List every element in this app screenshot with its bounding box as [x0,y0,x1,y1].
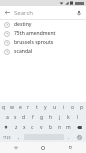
staticText: e [19,104,22,111]
staticText: scandal [14,48,33,55]
staticText: . [68,134,70,141]
button[interactable]: , [14,132,23,142]
button[interactable]: i [59,102,68,112]
staticText: k [67,114,70,121]
button[interactable]: brussels sprouts [0,38,86,47]
staticText: q [2,104,6,111]
button[interactable]: Delete [73,122,86,132]
staticText: a [6,114,9,121]
staticText: g [40,114,44,121]
button[interactable]: Shift [0,122,12,132]
staticText: s [14,114,17,121]
staticText: 75th amendment [14,30,56,37]
button[interactable]: r [24,102,32,112]
button[interactable]: h [46,112,55,122]
staticText: destiny [14,21,32,28]
staticText: u [53,104,57,111]
button[interactable]: Recent apps [59,142,81,153]
staticText: v [40,124,43,131]
staticText: c [31,124,34,131]
button[interactable]: s [11,112,19,122]
button[interactable]: a [3,112,11,122]
staticText: , [18,134,20,141]
button[interactable]: ?123 [0,132,14,142]
button[interactable]: o [68,102,77,112]
staticText: y [44,104,47,111]
staticText: d [22,114,26,121]
button[interactable]: c [28,122,37,132]
button[interactable]: destiny [0,20,86,29]
staticText: Search [14,9,33,17]
staticText: t [36,104,38,111]
staticText: n [58,124,62,131]
button[interactable]: x [20,122,28,132]
button[interactable]: z [12,122,20,132]
staticText: j [59,114,61,121]
button[interactable]: n [55,122,64,132]
staticText: brussels sprouts [14,39,54,46]
staticText: x [23,124,26,131]
staticText: o [71,104,75,111]
button[interactable]: Search [73,132,86,142]
staticText: f [32,114,34,121]
button[interactable]: k [64,112,73,122]
button[interactable]: y [41,102,50,112]
button[interactable]: d [19,112,28,122]
staticText: h [49,114,53,121]
button[interactable]: 75th amendment [0,29,86,38]
staticText: i [63,104,65,111]
button[interactable]: l [73,112,82,122]
staticText: l [77,114,79,121]
button[interactable]: u [50,102,59,112]
button[interactable]: t [32,102,41,112]
button[interactable]: p [77,102,86,112]
button[interactable]: f [28,112,37,122]
button[interactable]: j [55,112,64,122]
staticText: w [10,104,14,111]
button[interactable]: q [0,102,8,112]
button[interactable]: Home [32,142,54,153]
button[interactable]: Back [5,142,27,153]
button[interactable]: scandal [0,47,86,56]
button[interactable]: Voice search [72,6,86,19]
button[interactable]: Back [0,6,14,19]
button[interactable]: w [8,102,16,112]
button[interactable]: g [37,112,46,122]
button[interactable]: e [16,102,24,112]
staticText: p [80,104,84,111]
button[interactable]: Search [14,6,72,19]
button[interactable]: . [65,132,73,142]
staticText: r [27,104,30,111]
button[interactable]: b [46,122,55,132]
staticText: b [49,124,53,131]
staticText: ?123 [3,135,11,140]
button[interactable]: v [37,122,46,132]
button[interactable]: m [64,122,73,132]
staticText: z [15,124,18,131]
staticText: m [66,124,71,131]
